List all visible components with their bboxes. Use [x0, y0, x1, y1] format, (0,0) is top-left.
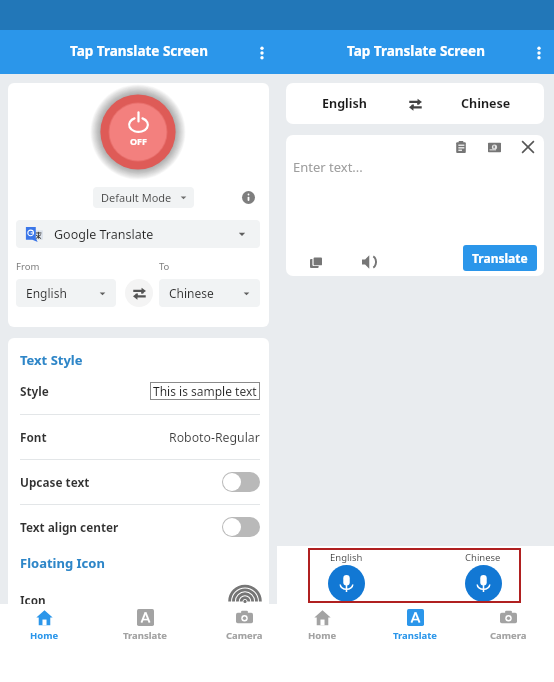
staticText: To: [159, 260, 170, 273]
staticText: From: [16, 260, 40, 273]
button[interactable]: Text align center: [20, 505, 260, 549]
staticText: Font: [20, 429, 47, 445]
button[interactable]: Translate: [463, 245, 537, 271]
button[interactable]: Camera translate: [485, 138, 503, 156]
staticText: Style: [20, 383, 49, 399]
button[interactable]: More options: [251, 42, 273, 64]
button[interactable]: More options: [528, 42, 550, 64]
staticText: English: [322, 95, 367, 112]
staticText: Chinese: [169, 285, 214, 301]
staticText: Floating Icon: [20, 554, 105, 572]
staticText: Text align center: [20, 519, 119, 535]
button[interactable]: Swap languages: [125, 279, 153, 307]
button[interactable]: English: [16, 279, 116, 307]
staticText: Chinese: [461, 95, 511, 112]
button[interactable]: Toggle: [222, 517, 260, 537]
button[interactable]: Camera: [464, 609, 552, 642]
button[interactable]: Swap languages: [402, 91, 428, 117]
button[interactable]: Home: [278, 609, 366, 642]
staticText: English: [26, 285, 67, 301]
button[interactable]: Toggle: [222, 472, 260, 492]
staticText: Tap Translate Screen: [347, 42, 485, 60]
button[interactable]: Default Mode: [93, 187, 194, 208]
button[interactable]: Translate: [101, 609, 189, 642]
button[interactable]: Clear: [519, 138, 537, 156]
button[interactable]: Font: [20, 415, 260, 459]
staticText: Camera: [226, 629, 263, 642]
button[interactable]: Chinese: [450, 548, 516, 602]
staticText: Text Style: [20, 351, 83, 369]
staticText: Tap Translate Screen: [70, 42, 208, 60]
button[interactable]: Paste: [452, 138, 470, 156]
staticText: Chinese: [465, 551, 501, 564]
button[interactable]: Style: [20, 382, 260, 400]
button[interactable]: Chinese: [159, 279, 260, 307]
staticText: Translate: [472, 250, 528, 266]
button[interactable]: Info: [242, 191, 255, 204]
button[interactable]: Translate: [371, 609, 459, 642]
staticText: OFF: [130, 135, 148, 147]
staticText: Home: [308, 629, 337, 642]
staticText: Translate: [123, 629, 168, 642]
button[interactable]: Upcase text: [20, 460, 260, 504]
button[interactable]: Home: [0, 609, 88, 642]
staticText: Roboto-Regular: [169, 429, 260, 446]
staticText: Upcase text: [20, 474, 90, 490]
button[interactable]: Speak: [359, 252, 379, 272]
button[interactable]: Camera: [200, 609, 288, 642]
button[interactable]: English: [313, 548, 379, 602]
staticText: Icon: [20, 592, 46, 608]
button[interactable]: Chinese: [428, 83, 544, 124]
staticText: Camera: [490, 629, 527, 642]
staticText: This is sample text: [153, 383, 257, 399]
button[interactable]: Google Translate: [16, 220, 260, 248]
staticText: Enter text...: [293, 158, 363, 176]
staticText: Google Translate: [54, 226, 154, 243]
staticText: Default Mode: [101, 190, 172, 205]
button[interactable]: English: [286, 83, 402, 124]
staticText: Home: [30, 629, 59, 642]
button[interactable]: Icon: [20, 584, 260, 616]
staticText: Translate: [393, 629, 438, 642]
staticText: English: [330, 551, 363, 564]
button[interactable]: Copy: [306, 252, 326, 272]
